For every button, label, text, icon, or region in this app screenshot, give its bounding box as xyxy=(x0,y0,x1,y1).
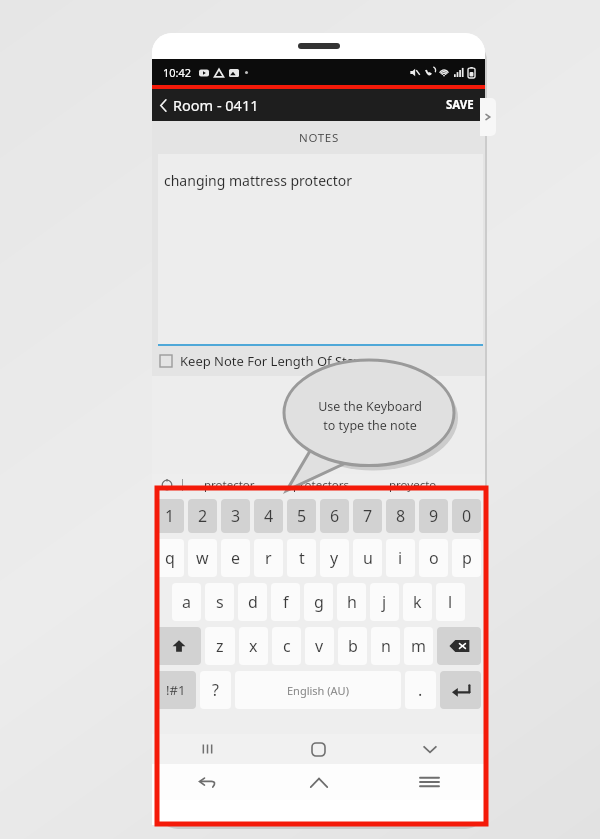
staticText: protectors xyxy=(293,477,350,493)
staticText: proyecto xyxy=(389,477,437,493)
button[interactable]: Home xyxy=(263,764,374,800)
button[interactable]: 0 xyxy=(452,499,481,533)
button[interactable]: m xyxy=(404,627,433,665)
staticText: e xyxy=(231,547,241,569)
button[interactable]: Expand panel xyxy=(480,98,496,136)
button[interactable]: k xyxy=(403,583,432,621)
button[interactable]: p xyxy=(452,539,481,577)
staticText: d xyxy=(248,591,258,613)
staticText: v xyxy=(315,635,324,657)
other: Enter xyxy=(451,683,471,698)
button[interactable]: y xyxy=(320,539,349,577)
staticText: !#1 xyxy=(166,681,186,699)
button[interactable]: Keep Note For Length Of Stay xyxy=(152,346,485,376)
staticText: Room - 0411 xyxy=(173,95,259,115)
button[interactable]: l xyxy=(436,583,465,621)
button[interactable]: s xyxy=(205,583,234,621)
staticText: . xyxy=(418,679,423,701)
button[interactable]: 6 xyxy=(320,499,349,533)
button[interactable]: r xyxy=(254,539,283,577)
staticText: o xyxy=(429,547,439,569)
staticText: 10:42 xyxy=(163,65,192,80)
button[interactable]: g xyxy=(304,583,333,621)
button[interactable]: More suggestions xyxy=(459,474,485,496)
staticText: s xyxy=(216,591,224,613)
button[interactable]: 2 xyxy=(188,499,217,533)
other: Backspace xyxy=(449,639,470,653)
staticText: 1 xyxy=(165,505,175,527)
button[interactable]: f xyxy=(271,583,300,621)
staticText: 0 xyxy=(462,505,472,527)
staticText: j xyxy=(382,591,387,613)
staticText: 9 xyxy=(429,505,439,527)
button[interactable]: Home xyxy=(263,734,374,764)
button[interactable]: q xyxy=(156,539,184,577)
staticText: changing mattress protector xyxy=(164,171,353,190)
button[interactable]: j xyxy=(370,583,399,621)
button[interactable]: Menu xyxy=(374,764,485,800)
button[interactable]: n xyxy=(371,627,400,665)
button[interactable]: protector xyxy=(183,474,275,496)
button[interactable]: 5 xyxy=(287,499,316,533)
button[interactable]: t xyxy=(287,539,316,577)
button[interactable]: w xyxy=(188,539,217,577)
button[interactable]: 1 xyxy=(156,499,184,533)
staticText: NOTES xyxy=(299,130,339,146)
button[interactable]: changing mattress protector xyxy=(158,154,483,344)
staticText: 5 xyxy=(297,505,307,527)
button[interactable]: h xyxy=(337,583,366,621)
button[interactable]: SAVE xyxy=(435,97,485,113)
staticText: 3 xyxy=(231,505,241,527)
button[interactable]: 4 xyxy=(254,499,283,533)
staticText: protector xyxy=(204,477,255,493)
staticText: z xyxy=(216,635,224,657)
button[interactable]: o xyxy=(419,539,448,577)
button[interactable]: Back xyxy=(152,764,263,800)
staticText: f xyxy=(283,591,289,613)
button[interactable]: 9 xyxy=(419,499,448,533)
button[interactable]: . xyxy=(405,671,436,709)
staticText: c xyxy=(283,635,291,657)
staticText: ? xyxy=(212,679,219,701)
button[interactable]: x xyxy=(239,627,268,665)
staticText: 6 xyxy=(330,505,340,527)
button[interactable]: proyecto xyxy=(367,474,459,496)
button[interactable]: a xyxy=(172,583,201,621)
staticText: 4 xyxy=(264,505,274,527)
button[interactable]: 3 xyxy=(221,499,250,533)
button[interactable]: e xyxy=(221,539,250,577)
button[interactable]: Enter xyxy=(440,671,481,709)
button[interactable]: Voice typing xyxy=(152,474,182,496)
staticText: 7 xyxy=(363,505,373,527)
staticText: 8 xyxy=(396,505,406,527)
button[interactable]: 7 xyxy=(353,499,382,533)
button[interactable]: Hide keyboard xyxy=(374,734,485,764)
button[interactable]: u xyxy=(353,539,382,577)
button[interactable]: i xyxy=(386,539,415,577)
staticText: Keep Note For Length Of Stay xyxy=(180,352,361,370)
staticText: p xyxy=(462,547,472,569)
button[interactable]: d xyxy=(238,583,267,621)
button[interactable]: ? xyxy=(200,671,231,709)
button[interactable]: Recents xyxy=(152,734,263,764)
staticText: h xyxy=(347,591,357,613)
staticText: n xyxy=(381,635,391,657)
button[interactable]: !#1 xyxy=(156,671,196,709)
staticText: r xyxy=(265,547,272,569)
staticText: ... xyxy=(468,478,477,493)
staticText: k xyxy=(413,591,422,613)
button[interactable]: Shift xyxy=(156,627,201,665)
button[interactable]: Room - 0411 xyxy=(152,95,267,115)
button[interactable]: v xyxy=(305,627,334,665)
button[interactable]: Backspace xyxy=(437,627,481,665)
staticText: q xyxy=(165,547,175,569)
button[interactable]: English (AU) xyxy=(235,671,401,709)
staticText: i xyxy=(398,547,403,569)
button[interactable]: b xyxy=(338,627,367,665)
staticText: to type the note xyxy=(323,417,417,434)
button[interactable]: z xyxy=(205,627,235,665)
button[interactable]: 8 xyxy=(386,499,415,533)
staticText: m xyxy=(411,635,426,657)
button[interactable]: c xyxy=(272,627,301,665)
button[interactable]: protectors xyxy=(275,474,367,496)
